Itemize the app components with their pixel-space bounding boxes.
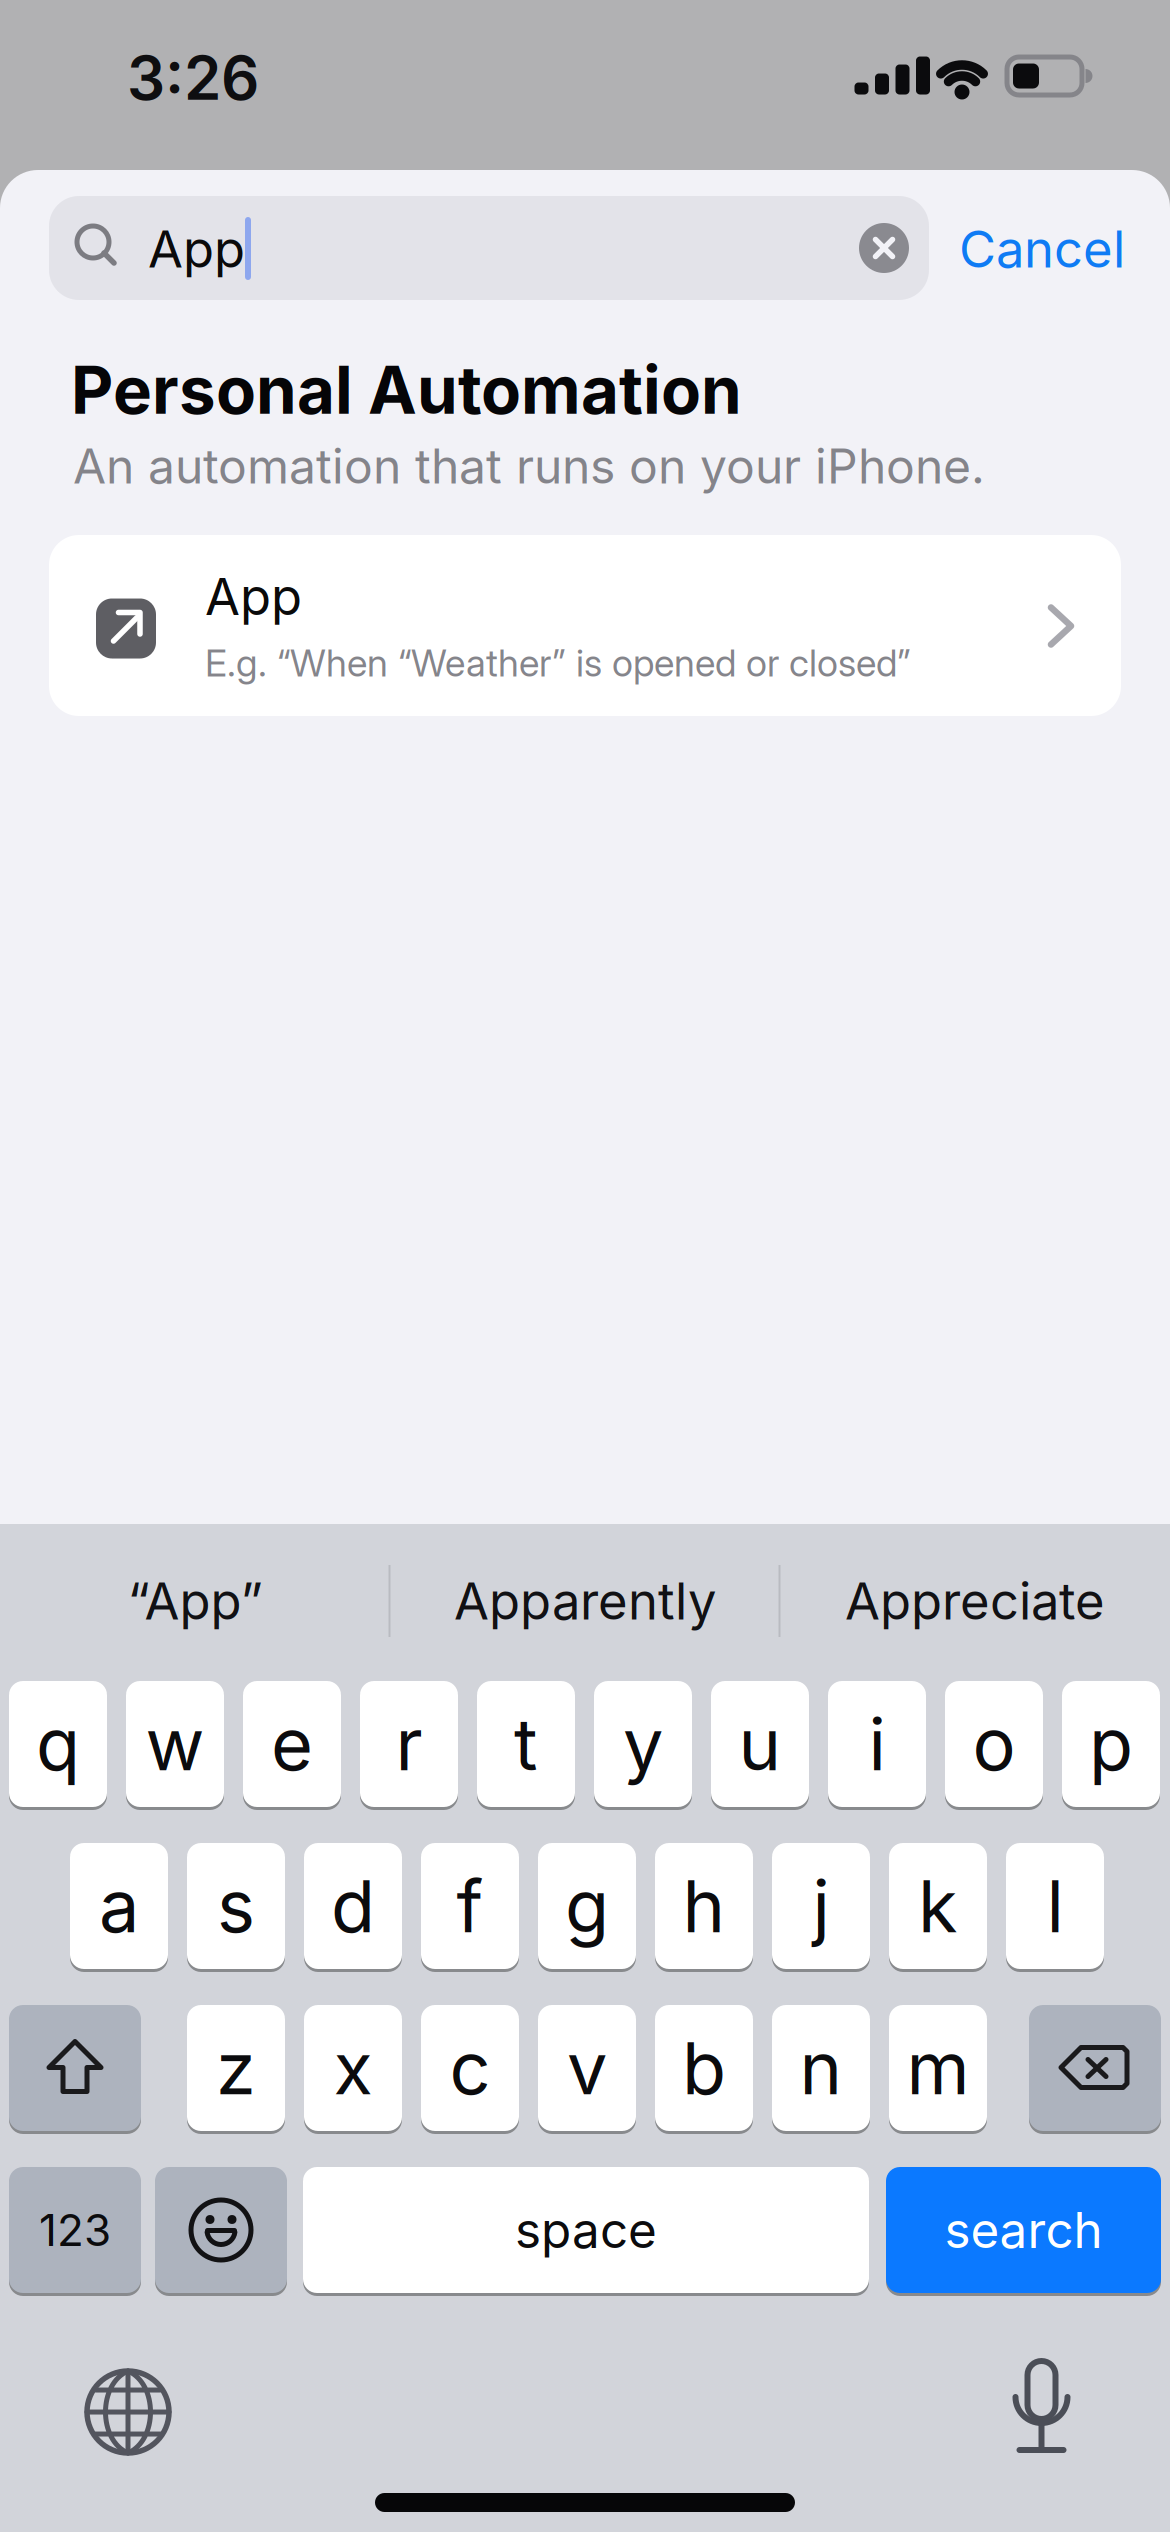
button[interactable]: t bbox=[477, 1679, 575, 1808]
button[interactable]: i bbox=[828, 1679, 926, 1808]
staticText: “App” bbox=[127, 1571, 262, 1631]
staticText: s bbox=[217, 1863, 255, 1948]
staticText: i bbox=[868, 1701, 885, 1786]
staticText: Personal Automation bbox=[71, 351, 742, 429]
button[interactable]: a bbox=[70, 1841, 168, 1970]
staticText: y bbox=[623, 1701, 663, 1786]
staticText: q bbox=[36, 1701, 80, 1786]
staticText: An automation that runs on your iPhone. bbox=[73, 438, 985, 494]
staticText: f bbox=[456, 1863, 483, 1948]
staticText: l bbox=[1046, 1863, 1063, 1948]
staticText: search bbox=[944, 2201, 1102, 2259]
button[interactable]: s bbox=[187, 1841, 285, 1970]
button[interactable]: l bbox=[1006, 1841, 1104, 1970]
staticText: a bbox=[99, 1863, 139, 1948]
staticText: g bbox=[565, 1863, 609, 1948]
staticText: 3:26 bbox=[127, 43, 259, 113]
button[interactable]: m bbox=[889, 2003, 987, 2132]
button[interactable]: y bbox=[594, 1679, 692, 1808]
button[interactable]: “App” bbox=[5, 1526, 385, 1676]
staticText: c bbox=[449, 2025, 490, 2110]
staticText: z bbox=[216, 2025, 256, 2110]
staticText: Cancel bbox=[959, 219, 1125, 279]
staticText: r bbox=[395, 1701, 422, 1786]
button[interactable]: Appreciate bbox=[785, 1526, 1165, 1676]
staticText: App bbox=[148, 219, 245, 279]
button[interactable]: n bbox=[772, 2003, 870, 2132]
button[interactable]: x bbox=[304, 2003, 402, 2132]
button[interactable]: App bbox=[49, 196, 929, 300]
button[interactable]: space bbox=[303, 2165, 869, 2294]
button[interactable]: o bbox=[945, 1679, 1043, 1808]
staticText: o bbox=[972, 1701, 1015, 1786]
button[interactable]: Delete bbox=[1029, 2003, 1161, 2132]
button[interactable]: search bbox=[886, 2165, 1161, 2294]
staticText: d bbox=[331, 1863, 375, 1948]
staticText: Apparently bbox=[454, 1571, 716, 1631]
button[interactable]: v bbox=[538, 2003, 636, 2132]
button[interactable]: k bbox=[889, 1841, 987, 1970]
staticText: 123 bbox=[39, 2204, 111, 2256]
button[interactable]: g bbox=[538, 1841, 636, 1970]
button[interactable]: Dictation bbox=[971, 2325, 1111, 2485]
button[interactable]: f bbox=[421, 1841, 519, 1970]
staticText: x bbox=[333, 2025, 372, 2110]
staticText: Appreciate bbox=[845, 1571, 1105, 1631]
staticText: j bbox=[812, 1863, 829, 1948]
button[interactable]: r bbox=[360, 1679, 458, 1808]
button[interactable]: u bbox=[711, 1679, 809, 1808]
button[interactable]: 123 bbox=[9, 2165, 141, 2294]
button[interactable]: d bbox=[304, 1841, 402, 1970]
button[interactable]: b bbox=[655, 2003, 753, 2132]
button[interactable]: Emoji bbox=[155, 2165, 287, 2294]
staticText: t bbox=[514, 1701, 538, 1786]
button[interactable]: Next keyboard bbox=[68, 2352, 188, 2472]
button[interactable]: e bbox=[243, 1679, 341, 1808]
staticText: n bbox=[799, 2025, 842, 2110]
staticText: e bbox=[271, 1701, 313, 1786]
button[interactable]: h bbox=[655, 1841, 753, 1970]
staticText: p bbox=[1089, 1701, 1133, 1786]
button[interactable]: q bbox=[9, 1679, 107, 1808]
staticText: m bbox=[906, 2025, 969, 2110]
button[interactable]: Clear text bbox=[859, 223, 909, 273]
staticText: E.g. “When “Weather” is opened or closed… bbox=[205, 641, 911, 685]
button[interactable]: w bbox=[126, 1679, 224, 1808]
button[interactable]: p bbox=[1062, 1679, 1160, 1808]
button[interactable]: z bbox=[187, 2003, 285, 2132]
staticText: space bbox=[515, 2201, 657, 2259]
button[interactable]: j bbox=[772, 1841, 870, 1970]
staticText: w bbox=[145, 1701, 204, 1786]
button[interactable]: Cancel bbox=[959, 219, 1125, 279]
staticText: h bbox=[682, 1863, 725, 1948]
staticText: App bbox=[205, 567, 302, 626]
staticText: b bbox=[682, 2025, 726, 2110]
staticText: v bbox=[567, 2025, 607, 2110]
button[interactable]: c bbox=[421, 2003, 519, 2132]
button[interactable]: Apparently bbox=[395, 1526, 775, 1676]
button[interactable]: App bbox=[49, 535, 1121, 716]
staticText: u bbox=[738, 1701, 781, 1786]
staticText: k bbox=[918, 1863, 958, 1948]
button[interactable]: Shift bbox=[9, 2003, 141, 2132]
